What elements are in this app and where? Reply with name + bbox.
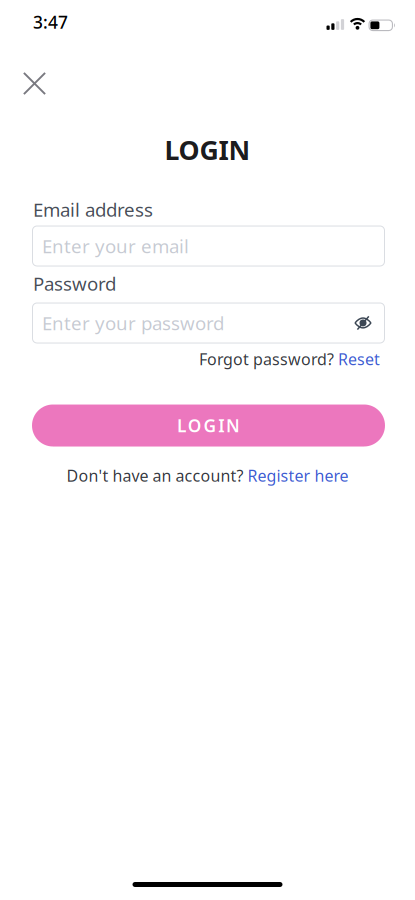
staticText: 3:47: [33, 10, 68, 33]
staticText: Enter your email: [42, 234, 189, 258]
staticText: Email address: [33, 197, 153, 222]
button[interactable]: Show password: [346, 316, 385, 330]
staticText: Don't have an account?: [66, 465, 243, 486]
staticText: Password: [33, 271, 116, 296]
button[interactable]: LOGIN: [32, 404, 385, 446]
staticText: LOGIN: [164, 132, 250, 167]
button[interactable]: Close: [13, 62, 56, 105]
staticText: Enter your password: [42, 311, 224, 335]
staticText: Register here: [247, 465, 348, 486]
button[interactable]: Register here: [247, 465, 348, 486]
staticText: Forgot password?: [199, 348, 334, 370]
button[interactable]: Reset: [338, 348, 380, 370]
staticText: Reset: [338, 348, 380, 370]
staticText: LOGIN: [177, 414, 240, 437]
